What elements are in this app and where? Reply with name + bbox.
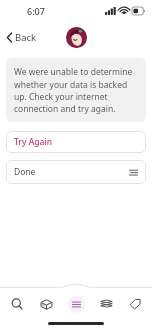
button[interactable]: Tags xyxy=(122,292,148,316)
staticText: We were unable to determine whether your… xyxy=(14,66,138,114)
button[interactable]: Packages xyxy=(33,292,59,316)
button[interactable]: Search xyxy=(4,292,30,316)
button[interactable]: Done xyxy=(6,160,146,184)
staticText: 6:07 xyxy=(27,5,45,17)
staticText: Done xyxy=(14,166,36,178)
staticText: Try Again xyxy=(14,136,52,148)
button[interactable]: Back xyxy=(0,27,45,48)
button[interactable]: Library xyxy=(93,292,119,316)
button[interactable]: We were unable to determine whether your… xyxy=(6,58,146,122)
button[interactable]: Try Again xyxy=(6,131,146,153)
button[interactable]: Profile xyxy=(66,27,87,48)
button[interactable]: List xyxy=(63,292,89,316)
staticText: Back xyxy=(15,31,37,44)
